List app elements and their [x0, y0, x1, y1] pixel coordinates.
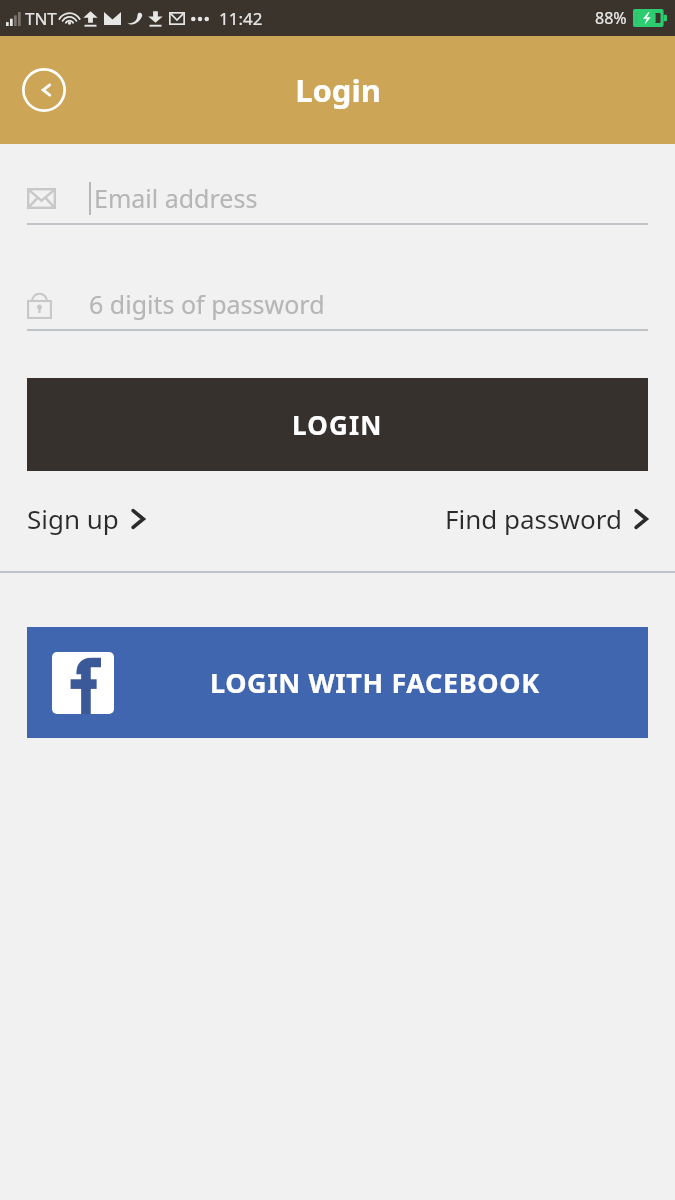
staticText: TNT	[25, 7, 57, 30]
staticText: LOGIN WITH FACEBOOK	[210, 664, 540, 701]
button[interactable]: LOGIN	[27, 378, 648, 471]
staticText: Login	[295, 69, 381, 111]
staticText: 88%	[595, 7, 627, 29]
button[interactable]: Back	[18, 64, 70, 116]
staticText: Email address	[94, 181, 258, 215]
button[interactable]: Sign up	[27, 495, 145, 542]
button[interactable]: Email address	[27, 181, 648, 225]
staticText: Sign up	[27, 501, 119, 536]
button[interactable]: 6 digits of password	[27, 287, 648, 331]
staticText: 6 digits of password	[89, 287, 325, 321]
button[interactable]: LOGIN WITH FACEBOOK	[27, 627, 648, 738]
staticText: Find password	[445, 501, 622, 536]
staticText: 11:42	[219, 7, 263, 30]
staticText: LOGIN	[292, 407, 383, 442]
button[interactable]: Find password	[445, 495, 648, 542]
